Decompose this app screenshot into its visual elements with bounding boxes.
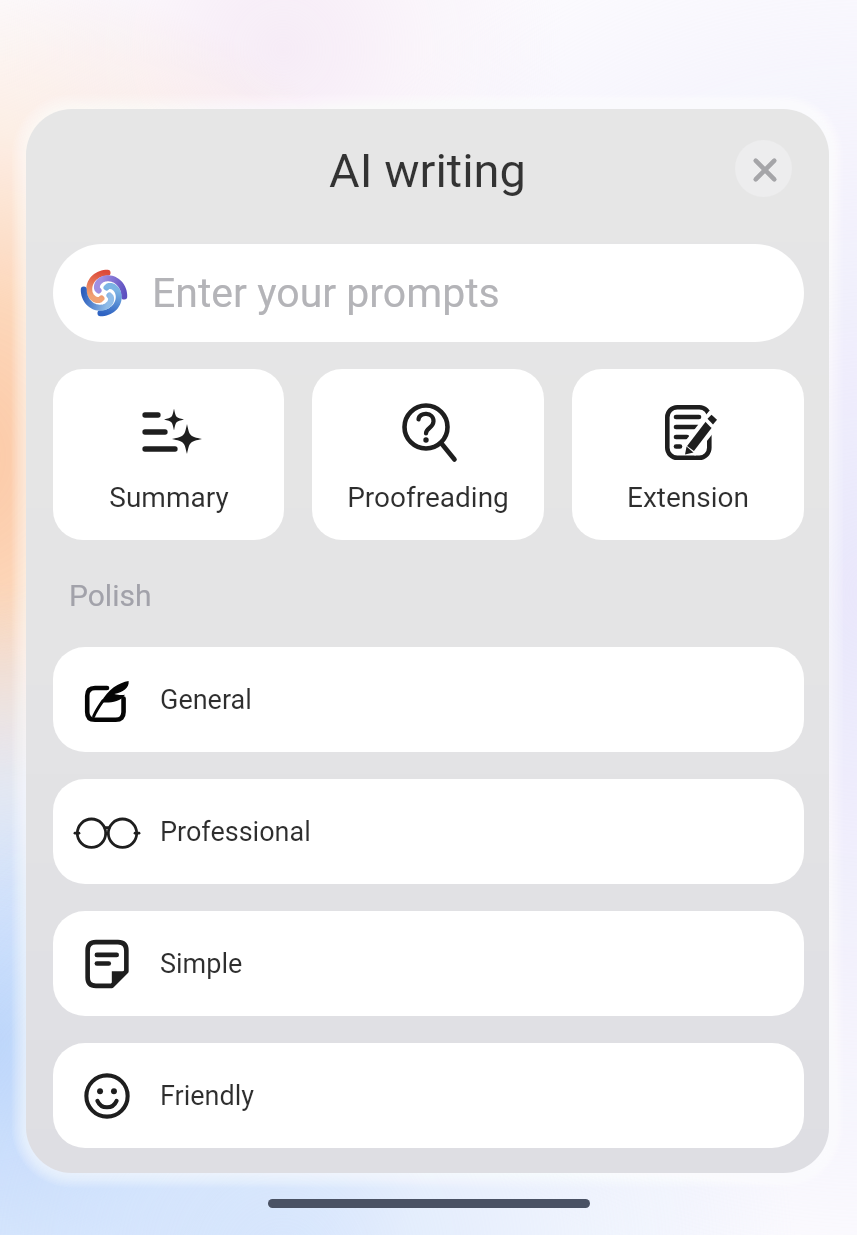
staticText: General bbox=[160, 684, 252, 716]
button[interactable]: Professional bbox=[53, 779, 804, 884]
staticText: AI writing bbox=[26, 143, 829, 198]
button[interactable]: Extension bbox=[572, 369, 804, 540]
button[interactable]: Friendly bbox=[53, 1043, 804, 1148]
staticText: Friendly bbox=[160, 1080, 255, 1112]
button[interactable]: Close bbox=[735, 140, 792, 197]
button[interactable]: General bbox=[53, 647, 804, 752]
staticText: Proofreading bbox=[347, 481, 509, 514]
staticText: Summary bbox=[109, 481, 229, 514]
staticText: Extension bbox=[627, 481, 749, 514]
button[interactable]: Summary bbox=[53, 369, 284, 540]
button[interactable]: Enter your prompts bbox=[53, 244, 804, 342]
staticText: Simple bbox=[160, 948, 243, 980]
staticText: Enter your prompts bbox=[152, 269, 500, 317]
button[interactable]: Proofreading bbox=[312, 369, 544, 540]
staticText: Professional bbox=[160, 816, 311, 848]
button[interactable]: Simple bbox=[53, 911, 804, 1016]
staticText: Polish bbox=[69, 578, 152, 613]
